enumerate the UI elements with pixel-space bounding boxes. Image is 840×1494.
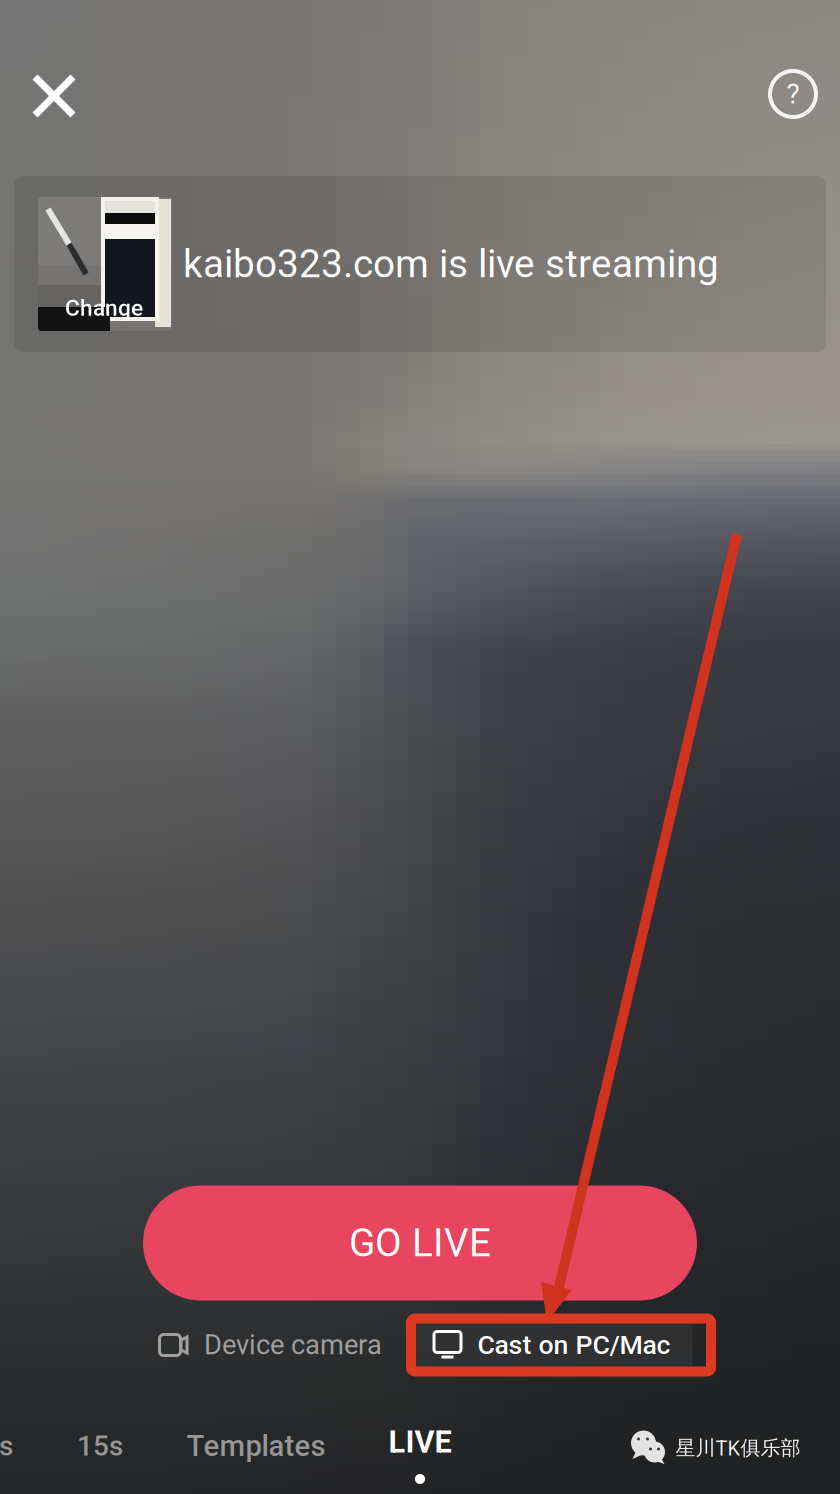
button[interactable]: Close [13,55,95,137]
staticText: GO LIVE [349,1220,491,1266]
button[interactable]: LIVE [366,1414,473,1494]
staticText: 星川TK俱乐部 [675,1435,800,1461]
button[interactable]: Templates [164,1413,347,1479]
staticText: kaibo323.com is live streaming [183,241,719,287]
staticText: Cast on PC/Mac [477,1329,670,1361]
button[interactable]: Cast on PC/Mac [411,1318,692,1372]
button[interactable]: Help [752,53,834,135]
button[interactable]: 15s [55,1414,145,1478]
button[interactable]: GO LIVE [143,1185,697,1300]
staticText: Device camera [204,1329,382,1361]
button[interactable]: Change [14,176,826,352]
staticText: Templates [186,1429,325,1463]
staticText: s [0,1430,13,1462]
staticText: ? [786,78,799,110]
staticText: LIVE [388,1424,451,1460]
staticText: Change [65,295,143,321]
staticText: 15s [77,1430,123,1462]
button[interactable]: Device camera [144,1318,396,1372]
